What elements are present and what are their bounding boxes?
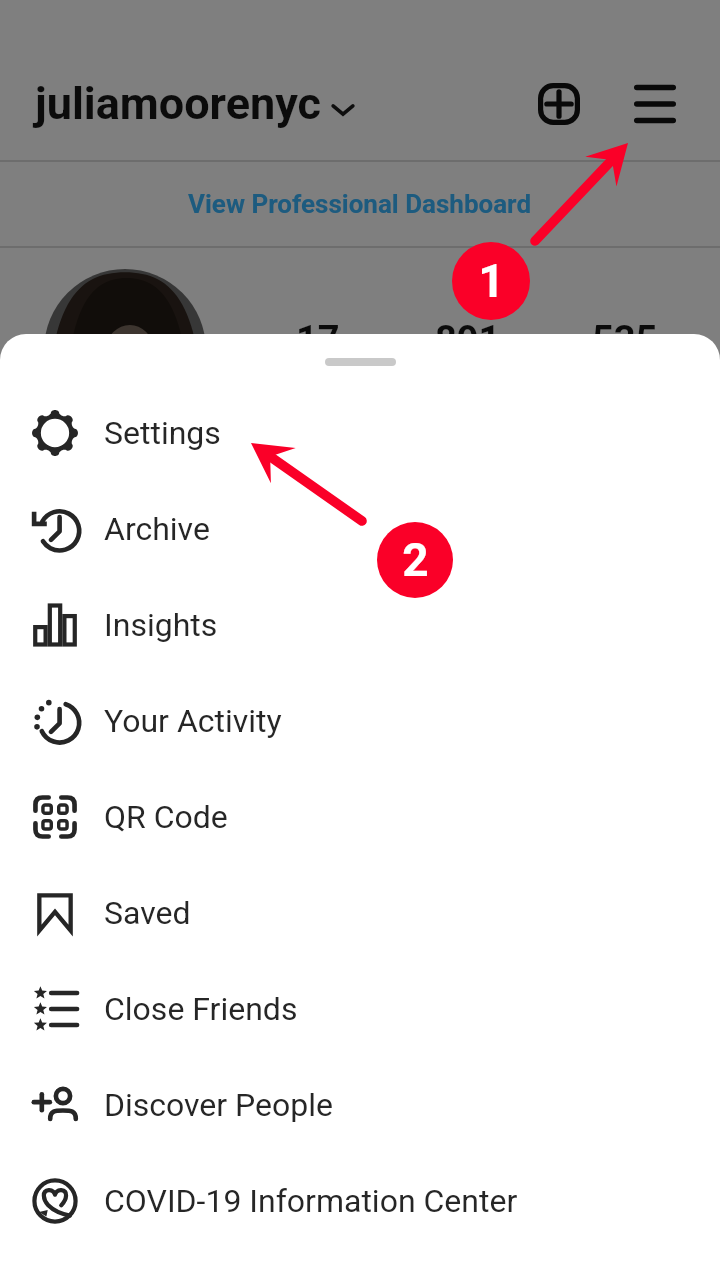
button[interactable]: Insights	[0, 577, 720, 673]
staticText: 17	[296, 318, 340, 363]
button[interactable]: Archive	[0, 481, 720, 577]
button[interactable]: 535	[544, 318, 704, 397]
staticText: COVID-19 Information Center	[104, 1182, 518, 1220]
button[interactable]: QR Code	[0, 769, 720, 865]
staticText: Posts	[280, 363, 355, 397]
staticText: 535	[592, 318, 658, 363]
button[interactable]: Saved	[0, 865, 720, 961]
button[interactable]: Discover People	[0, 1057, 720, 1153]
staticText: juliamoorenyc	[35, 77, 321, 130]
button[interactable]: COVID-19 Information Center	[0, 1153, 720, 1249]
staticText: Archive	[104, 510, 210, 548]
button[interactable]: 891	[387, 318, 547, 397]
button[interactable]: Menu	[634, 83, 676, 125]
button[interactable]: Create	[538, 83, 580, 125]
button[interactable]: Your Activity	[0, 673, 720, 769]
staticText: View Professional Dashboard	[188, 189, 532, 219]
button[interactable]: Settings	[0, 385, 720, 481]
staticText: Insights	[104, 606, 218, 644]
button[interactable]: Close Friends	[0, 961, 720, 1057]
staticText: 2	[402, 533, 429, 587]
button[interactable]: 17	[237, 318, 397, 397]
staticText: QR Code	[104, 798, 228, 836]
staticText: Discover People	[104, 1086, 334, 1124]
button[interactable]: View Professional Dashboard	[0, 162, 720, 246]
staticText: Your Activity	[104, 702, 282, 740]
staticText: Saved	[104, 894, 191, 932]
staticText: Settings	[104, 414, 221, 452]
staticText: 1	[478, 254, 505, 308]
staticText: Close Friends	[104, 990, 298, 1028]
staticText: 891	[435, 318, 501, 363]
button[interactable]: juliamoorenyc	[35, 77, 356, 130]
